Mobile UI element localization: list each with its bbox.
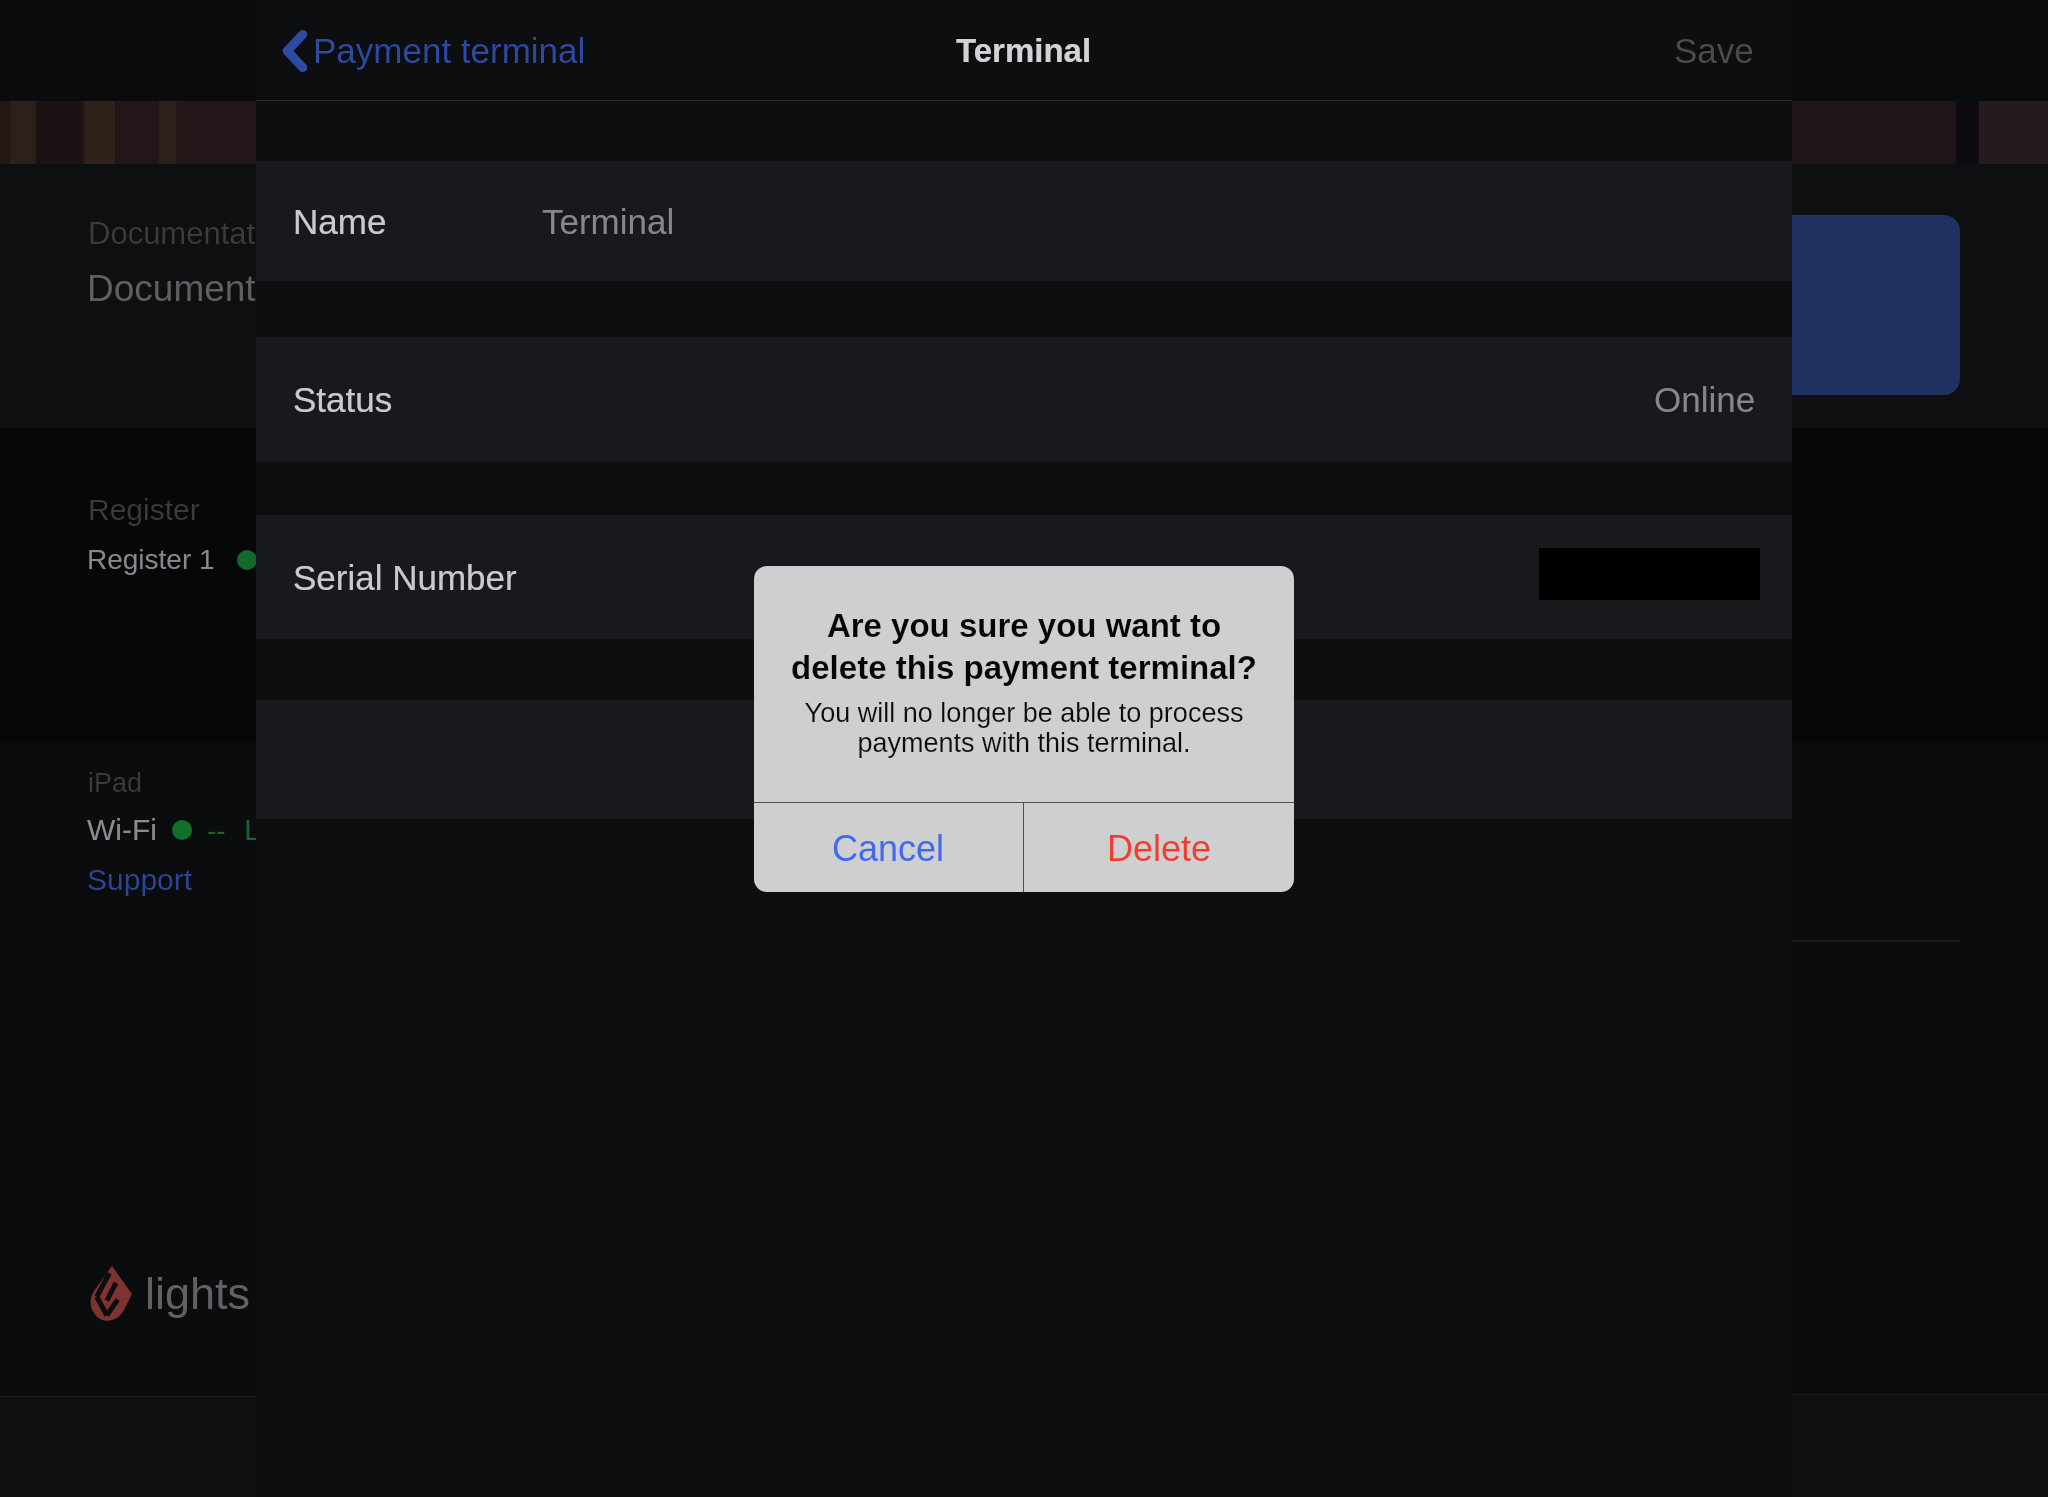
button[interactable]: Register 1 [87, 529, 257, 589]
staticText: Support [87, 863, 193, 897]
staticText: Save [1674, 31, 1754, 70]
button[interactable]: Cancel [754, 803, 1023, 892]
staticText: Serial Number [293, 558, 517, 597]
button[interactable]: Status [256, 337, 1792, 462]
staticText: Register [88, 493, 200, 527]
button[interactable]: Back [256, 0, 606, 101]
staticText: Terminal [956, 32, 1092, 69]
staticText: Wi-Fi [87, 813, 157, 847]
staticText: Status [293, 380, 393, 419]
other: Back [282, 28, 308, 74]
button[interactable]: Support [87, 850, 193, 910]
staticText: iPad [88, 768, 143, 798]
staticText: Documentati [88, 216, 263, 251]
staticText: Online [1654, 380, 1756, 419]
staticText: Payment terminal [313, 31, 586, 70]
staticText: You will no longer be able to process pa… [776, 698, 1272, 758]
staticText: -- [207, 815, 226, 846]
staticText: Terminal [542, 202, 675, 241]
staticText: Documenta [87, 268, 277, 309]
staticText: Cancel [832, 828, 945, 868]
button[interactable]: Save [1648, 0, 1792, 101]
button[interactable] [256, 700, 1792, 819]
staticText: lights [145, 1268, 251, 1318]
staticText: L [244, 813, 261, 847]
staticText: Delete [1107, 828, 1212, 868]
staticText: Are you sure you want to delete this pay… [784, 607, 1264, 686]
staticText: Register 1 [87, 544, 215, 575]
button[interactable]: Delete [1024, 803, 1294, 892]
staticText: Name [293, 202, 387, 241]
button[interactable]: Serial Number [256, 515, 1792, 639]
button[interactable]: Name [256, 161, 1792, 281]
